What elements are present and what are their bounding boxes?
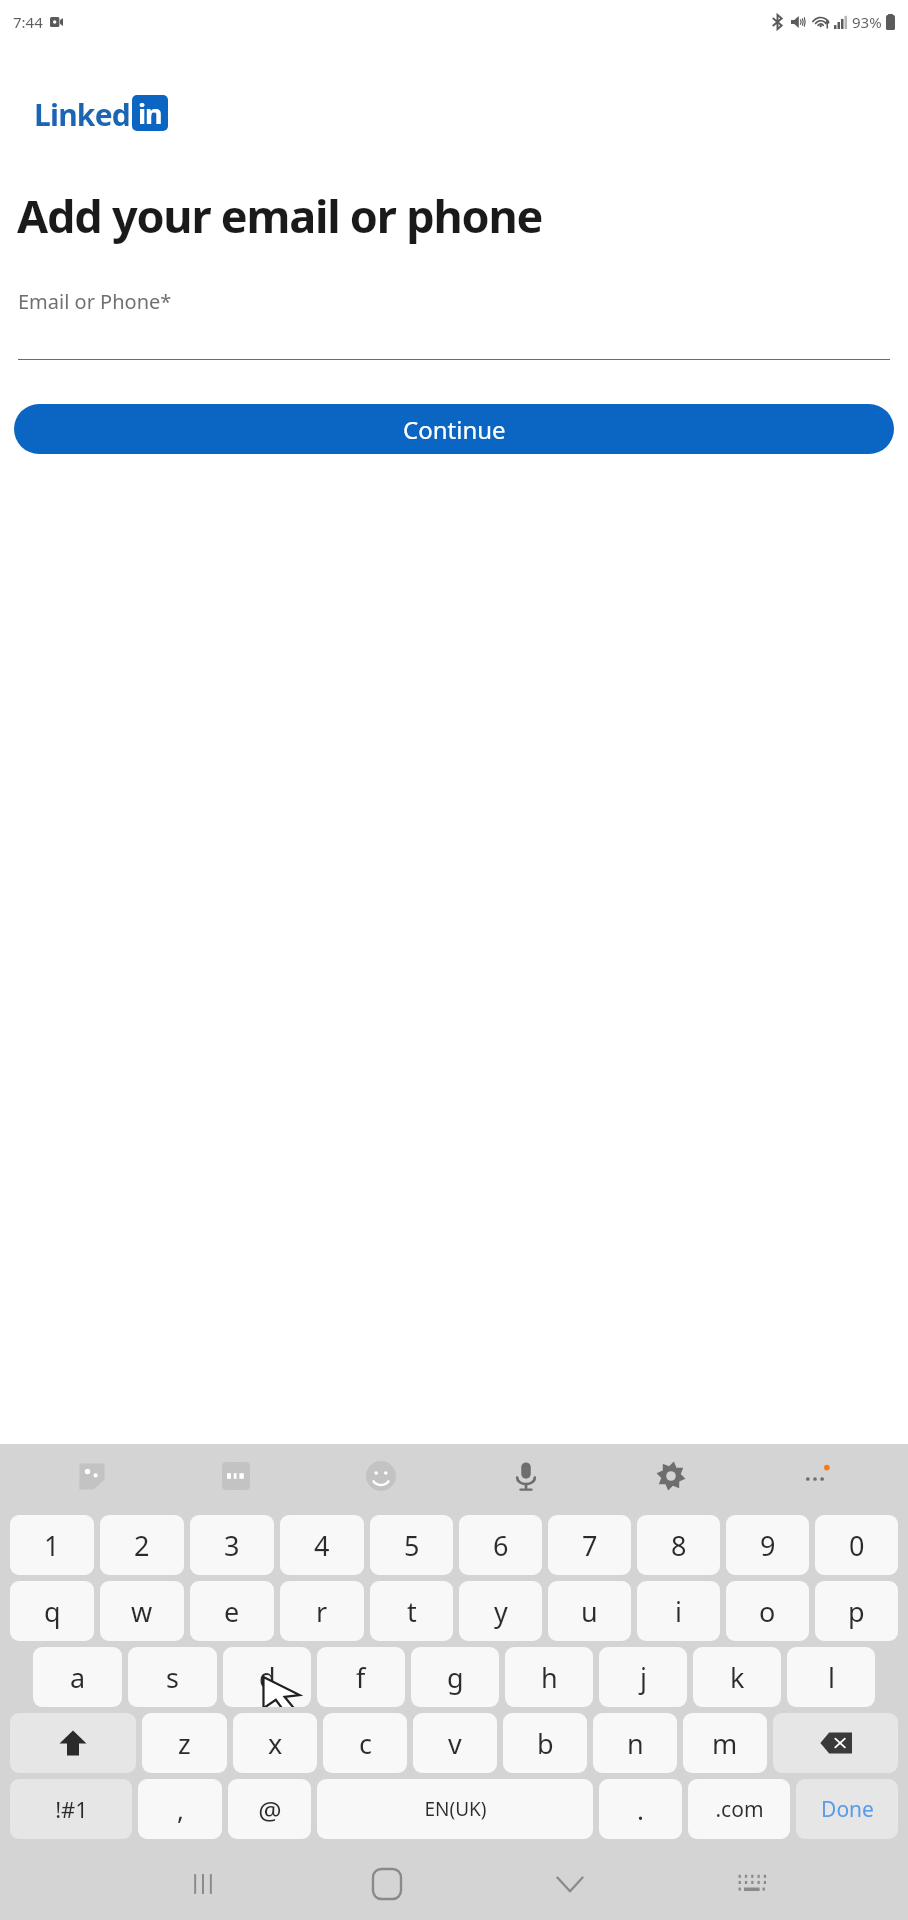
button[interactable]: e (190, 1581, 274, 1641)
button[interactable]: Shift (10, 1713, 136, 1773)
button[interactable]: More options (743, 1444, 888, 1507)
button[interactable]: Recent apps (111, 1848, 295, 1920)
button[interactable]: Keyboard settings (598, 1444, 743, 1507)
button[interactable]: y (459, 1581, 542, 1641)
button[interactable]: 6 (459, 1515, 542, 1575)
button[interactable]: j (599, 1647, 687, 1707)
staticText: , (177, 1792, 184, 1827)
button[interactable]: 8 (637, 1515, 720, 1575)
button[interactable]: 2 (100, 1515, 184, 1575)
button[interactable]: 9 (726, 1515, 809, 1575)
staticText: n (627, 1725, 644, 1762)
button[interactable]: v (413, 1713, 497, 1773)
staticText: k (730, 1659, 745, 1696)
staticText: r (316, 1593, 328, 1630)
button[interactable]: g (411, 1647, 499, 1707)
button[interactable]: n (593, 1713, 677, 1773)
button[interactable]: f (317, 1647, 405, 1707)
staticText: 1 (44, 1527, 60, 1564)
button[interactable]: 3 (190, 1515, 274, 1575)
staticText: Add your email or phone (17, 185, 543, 246)
button[interactable]: .com (688, 1779, 790, 1839)
staticText: @ (258, 1792, 282, 1827)
staticText: g (447, 1659, 464, 1696)
staticText: 93% (852, 12, 882, 32)
staticText: q (44, 1593, 61, 1630)
button[interactable]: . (599, 1779, 682, 1839)
staticText: o (759, 1593, 776, 1630)
staticText: .com (715, 1795, 764, 1824)
staticText: 7 (582, 1527, 598, 1564)
staticText: Continue (403, 413, 506, 446)
staticText: . (637, 1792, 644, 1827)
button[interactable]: p (815, 1581, 898, 1641)
staticText: d (259, 1659, 276, 1696)
button[interactable]: a (33, 1647, 122, 1707)
button[interactable]: 5 (370, 1515, 453, 1575)
button[interactable]: 0 (815, 1515, 898, 1575)
staticText: 7:44 (13, 12, 43, 32)
staticText: !#1 (55, 1794, 88, 1824)
staticText: 6 (493, 1527, 509, 1564)
button[interactable]: 4 (280, 1515, 364, 1575)
button[interactable]: Hide keyboard (478, 1848, 661, 1920)
button[interactable]: t (370, 1581, 453, 1641)
staticText: p (848, 1593, 865, 1630)
button[interactable]: @ (228, 1779, 311, 1839)
button[interactable]: k (693, 1647, 781, 1707)
button[interactable]: u (548, 1581, 631, 1641)
button[interactable]: , (138, 1779, 222, 1839)
button[interactable]: m (683, 1713, 767, 1773)
button[interactable]: !#1 (10, 1779, 132, 1839)
button[interactable]: Continue (14, 404, 894, 454)
button[interactable]: s (128, 1647, 217, 1707)
button[interactable]: Voice input (453, 1444, 598, 1507)
button[interactable]: w (100, 1581, 184, 1641)
button[interactable]: 7 (548, 1515, 631, 1575)
button[interactable]: d (223, 1647, 311, 1707)
button[interactable]: Backspace (773, 1713, 898, 1773)
button[interactable]: r (280, 1581, 364, 1641)
button[interactable]: z (142, 1713, 227, 1773)
staticText: in (138, 95, 162, 131)
button[interactable]: h (505, 1647, 593, 1707)
staticText: f (356, 1659, 366, 1696)
staticText: EN(UK) (424, 1796, 487, 1822)
button[interactable]: l (787, 1647, 875, 1707)
button[interactable]: b (503, 1713, 587, 1773)
staticText: l (828, 1659, 835, 1696)
staticText: t (407, 1593, 417, 1630)
button[interactable]: GIF (164, 1444, 308, 1507)
button[interactable]: Change keyboard (661, 1848, 844, 1920)
staticText: e (224, 1593, 240, 1630)
staticText: b (537, 1725, 554, 1762)
staticText: 5 (404, 1527, 420, 1564)
button[interactable]: Done (796, 1779, 898, 1839)
staticText: u (581, 1593, 598, 1630)
button[interactable]: i (637, 1581, 720, 1641)
staticText: s (166, 1659, 179, 1696)
staticText: c (359, 1725, 372, 1762)
staticText: 2 (134, 1527, 150, 1564)
staticText: j (640, 1659, 647, 1696)
staticText: x (268, 1725, 283, 1762)
button[interactable]: x (233, 1713, 317, 1773)
staticText: h (541, 1659, 558, 1696)
staticText: y (494, 1593, 508, 1630)
staticText: 8 (671, 1527, 687, 1564)
staticText: w (131, 1593, 153, 1630)
button[interactable]: o (726, 1581, 809, 1641)
button[interactable]: EN(UK) (317, 1779, 593, 1839)
button[interactable]: 1 (10, 1515, 94, 1575)
staticText: v (448, 1725, 462, 1762)
staticText: a (70, 1659, 86, 1696)
staticText: m (712, 1725, 738, 1762)
button[interactable]: Sticker (20, 1444, 164, 1507)
staticText: Done (821, 1795, 874, 1824)
button[interactable]: c (323, 1713, 407, 1773)
staticText: 9 (760, 1527, 776, 1564)
button[interactable]: Home (295, 1848, 478, 1920)
button[interactable]: q (10, 1581, 94, 1641)
staticText: z (178, 1725, 191, 1762)
button[interactable]: Emoji (308, 1444, 453, 1507)
